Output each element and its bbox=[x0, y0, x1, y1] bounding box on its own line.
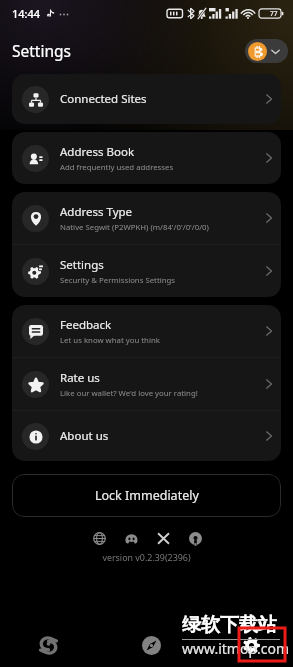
staticText: Lock Immediately bbox=[95, 487, 199, 504]
button[interactable]: Settings bbox=[12, 245, 281, 297]
staticText: Address Book bbox=[60, 144, 135, 160]
button[interactable]: About us bbox=[12, 411, 281, 461]
button[interactable]: GitHub bbox=[184, 527, 206, 549]
staticText: Feedback bbox=[60, 317, 112, 333]
staticText: Settings bbox=[60, 257, 104, 273]
staticText: 14:44 bbox=[12, 6, 41, 21]
staticText: Like our wallet? We'd love your rating! bbox=[60, 388, 198, 399]
button[interactable]: Wallet bbox=[28, 625, 68, 665]
button[interactable]: Feedback bbox=[12, 305, 281, 357]
button[interactable]: Lock Immediately bbox=[12, 474, 281, 517]
staticText: Let us know what you think bbox=[60, 335, 160, 346]
staticText: 77 bbox=[270, 9, 278, 18]
button[interactable]: Connected Sites bbox=[12, 74, 281, 124]
staticText: Security & Permissions Settings bbox=[60, 275, 176, 286]
button[interactable]: Address Book bbox=[12, 132, 281, 184]
button[interactable]: Address Type bbox=[12, 192, 281, 244]
staticText: Add frequently used addresses bbox=[60, 162, 174, 173]
staticText: Native Segwit (P2WPKH) (m/84'/0'/0'/0/0) bbox=[60, 222, 209, 233]
button[interactable]: X bbox=[152, 527, 174, 549]
button[interactable]: Switch network bbox=[245, 39, 288, 63]
button[interactable]: Rate us bbox=[12, 358, 281, 410]
button[interactable]: Settings bbox=[231, 625, 271, 665]
staticText: Rate us bbox=[60, 370, 100, 386]
button[interactable]: Explore bbox=[131, 625, 171, 665]
staticText: Connected Sites bbox=[60, 91, 147, 107]
staticText: www.itmop.com bbox=[182, 639, 290, 658]
staticText: version v0.2.39(2396) bbox=[0, 551, 293, 563]
staticText: Address Type bbox=[60, 204, 133, 220]
button[interactable]: Discord bbox=[120, 527, 142, 549]
staticText: Settings bbox=[12, 40, 71, 61]
staticText: 绿软下载站 bbox=[182, 613, 277, 637]
staticText: About us bbox=[60, 428, 109, 444]
button[interactable]: Website bbox=[88, 527, 110, 549]
